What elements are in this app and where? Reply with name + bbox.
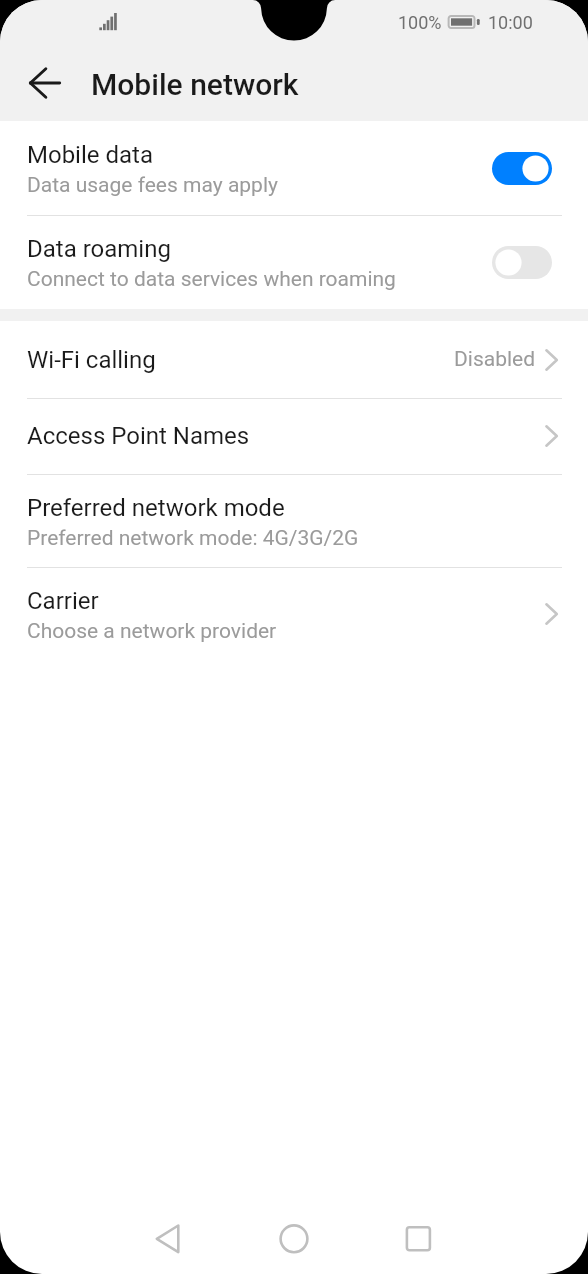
button[interactable]: Preferred network mode bbox=[0, 474, 588, 567]
button[interactable]: Access Point Names bbox=[0, 398, 588, 474]
button[interactable]: Carrier bbox=[0, 567, 588, 661]
staticText: Access Point Names bbox=[27, 422, 250, 450]
button[interactable]: Data roaming bbox=[0, 215, 588, 309]
staticText: Carrier bbox=[27, 587, 99, 615]
staticText: Mobile network bbox=[91, 67, 299, 102]
button[interactable]: Back bbox=[127, 1184, 209, 1274]
other: Open bbox=[540, 600, 564, 628]
staticText: Data usage fees may apply bbox=[27, 173, 278, 198]
staticText: 10:00 bbox=[488, 12, 533, 33]
staticText: Choose a network provider bbox=[27, 619, 277, 644]
staticText: Wi-Fi calling bbox=[27, 346, 156, 374]
button[interactable]: Home bbox=[253, 1184, 335, 1274]
staticText: Disabled bbox=[454, 347, 536, 372]
staticText: Preferred network mode bbox=[27, 494, 285, 522]
other: Open bbox=[540, 422, 564, 450]
staticText: 100% bbox=[398, 12, 442, 33]
staticText: Mobile data bbox=[27, 141, 153, 169]
button[interactable]: Wi-Fi calling bbox=[0, 321, 588, 398]
button[interactable]: Navigate up bbox=[5, 43, 85, 123]
button[interactable]: Mobile data bbox=[0, 121, 588, 215]
staticText: Data roaming bbox=[27, 235, 171, 263]
staticText: Connect to data services when roaming bbox=[27, 267, 396, 292]
other: Open bbox=[540, 346, 564, 374]
button[interactable]: Recents bbox=[377, 1184, 459, 1274]
staticText: Preferred network mode: 4G/3G/2G bbox=[27, 526, 359, 551]
